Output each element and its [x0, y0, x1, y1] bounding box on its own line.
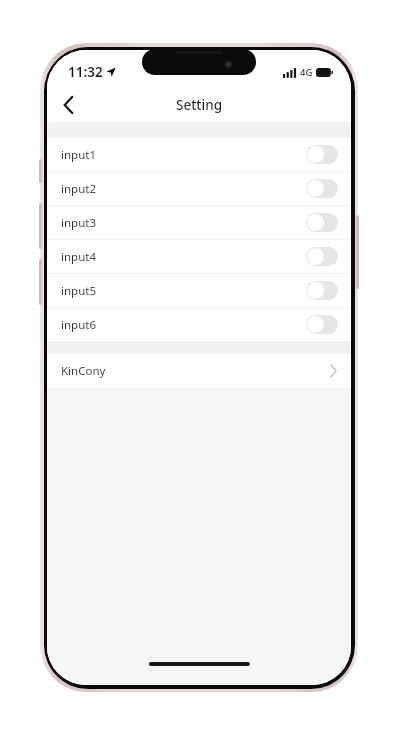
staticText: input5 — [61, 283, 96, 299]
button[interactable]: Toggle switch, off — [306, 315, 338, 334]
staticText: input3 — [61, 215, 96, 231]
button[interactable]: Toggle switch, off — [306, 281, 338, 300]
button[interactable]: input2 — [47, 172, 351, 205]
button[interactable]: Back — [47, 88, 89, 122]
button[interactable]: Toggle switch, off — [306, 179, 338, 198]
staticText: input6 — [61, 317, 96, 333]
staticText: Setting — [176, 96, 222, 114]
staticText: input2 — [61, 181, 96, 197]
staticText: input4 — [61, 249, 96, 265]
button[interactable]: KinCony — [47, 354, 351, 388]
button[interactable]: input1 — [47, 138, 351, 171]
button[interactable]: input3 — [47, 206, 351, 239]
staticText: 11:32 — [68, 63, 103, 81]
button[interactable]: input4 — [47, 240, 351, 273]
button[interactable]: input5 — [47, 274, 351, 307]
staticText: 4G — [300, 66, 313, 79]
staticText: input1 — [61, 147, 96, 163]
button[interactable]: input6 — [47, 308, 351, 341]
button[interactable]: Toggle switch, off — [306, 145, 338, 164]
staticText: KinCony — [61, 363, 106, 379]
button[interactable]: Toggle switch, off — [306, 247, 338, 266]
button[interactable]: Toggle switch, off — [306, 213, 338, 232]
